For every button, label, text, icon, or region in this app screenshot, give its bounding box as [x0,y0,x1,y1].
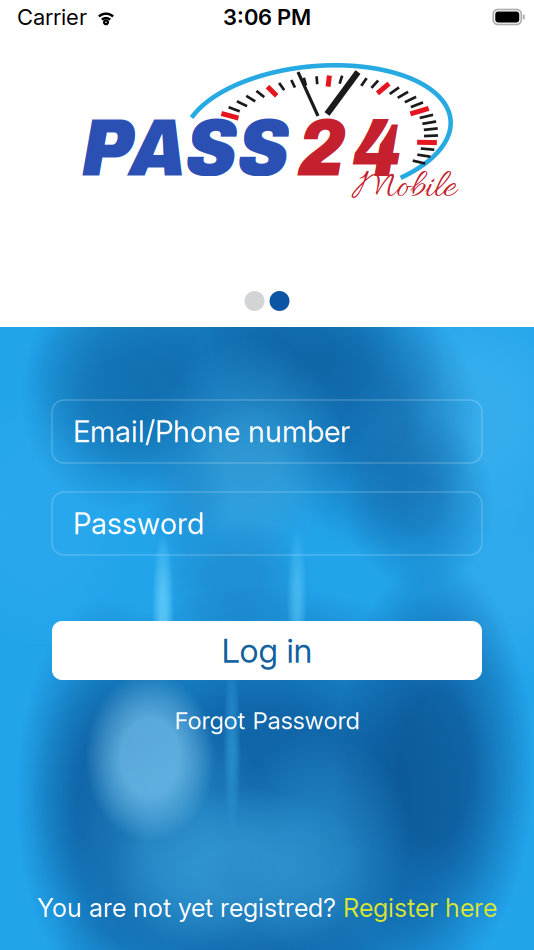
staticText: Email/Phone number [73,414,350,449]
staticText: Password [73,506,204,541]
staticText: Carrier [17,4,87,30]
button[interactable]: Log in [0,621,534,680]
staticText: Mobile [352,163,456,213]
staticText: PASS [81,104,290,192]
button[interactable]: Email/Phone number [52,400,482,463]
staticText: Log in [221,630,312,671]
button[interactable]: Register here [343,892,497,923]
staticText: You are not yet registred? [37,892,336,923]
staticText: Register here [343,892,497,923]
button[interactable]: Forgot Password [164,701,369,740]
staticText: 3:06 PM [223,4,311,30]
staticText: Forgot Password [174,706,359,735]
button[interactable]: Password [52,492,482,555]
staticText: 24 [298,104,401,192]
